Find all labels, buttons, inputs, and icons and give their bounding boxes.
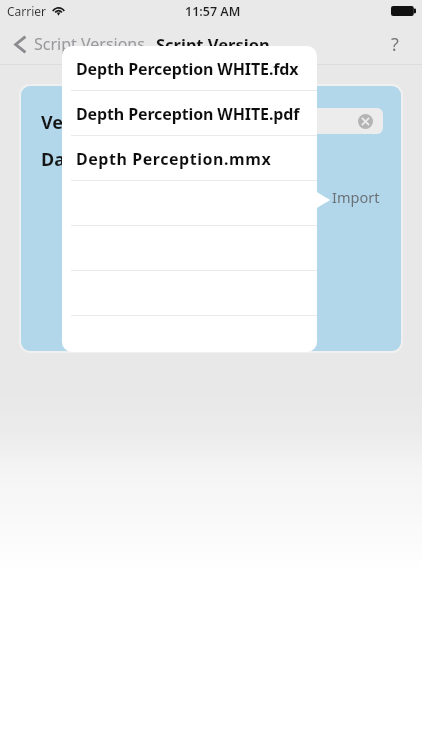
staticText: Depth Perception WHITE.pdf [76, 103, 300, 125]
button[interactable]: Script Versions [14, 33, 145, 55]
staticText: ? [391, 32, 399, 57]
button[interactable] [62, 226, 317, 271]
button[interactable]: Clear text [358, 114, 373, 129]
staticText: Carrier [7, 3, 47, 19]
staticText: Version: [41, 110, 114, 135]
button[interactable]: Help [380, 29, 410, 59]
button[interactable]: Depth Perception.mmx [62, 136, 317, 181]
staticText: Depth Perception.mmx [76, 148, 272, 170]
button[interactable] [62, 181, 317, 226]
button[interactable] [62, 316, 317, 352]
staticText: Depth Perception WHITE.fdx [76, 58, 299, 80]
button[interactable] [62, 271, 317, 316]
button[interactable]: Import [332, 187, 380, 207]
staticText: Date: [41, 147, 89, 172]
button[interactable]: Depth Perception WHITE.fdx [62, 46, 317, 91]
staticText: 11:57 AM [185, 3, 241, 20]
staticText: Script Versions [34, 33, 145, 55]
staticText: Import [332, 187, 380, 207]
button[interactable]: Depth Perception WHITE.pdf [62, 91, 317, 136]
staticText: Script Version [156, 33, 270, 55]
button[interactable] [193, 108, 383, 134]
